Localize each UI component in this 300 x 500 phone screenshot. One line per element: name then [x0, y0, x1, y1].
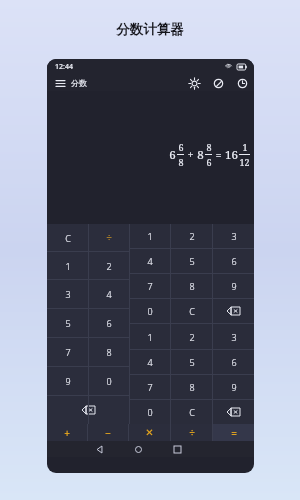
staticText: 8 — [189, 280, 195, 292]
button[interactable]: C — [171, 400, 212, 424]
button[interactable]: 5 — [171, 249, 212, 273]
staticText: ÷ — [189, 426, 195, 440]
button[interactable]: 6 — [88, 309, 129, 337]
button[interactable]: 7 — [47, 338, 88, 366]
staticText: 0 — [147, 305, 153, 317]
button[interactable]: Home — [132, 443, 145, 456]
staticText: 3 — [65, 288, 71, 300]
button[interactable]: 9 — [213, 375, 254, 399]
staticText: C — [189, 305, 195, 317]
staticText: 3 — [231, 230, 237, 242]
button[interactable]: 2 — [88, 252, 129, 279]
button[interactable]: Menu — [53, 76, 67, 90]
staticText: 7 — [147, 280, 153, 292]
staticText: 6 — [178, 141, 184, 153]
button[interactable]: 8 — [88, 338, 129, 366]
button[interactable]: Backspace — [47, 396, 129, 424]
staticText: 8 — [197, 147, 204, 163]
staticText: 分数计算器 — [116, 21, 184, 38]
staticText: 4 — [147, 356, 153, 368]
staticText: 2 — [106, 260, 112, 272]
staticText: + — [187, 147, 194, 162]
staticText: 9 — [231, 381, 237, 393]
button[interactable]: History — [235, 76, 249, 90]
button[interactable]: 1 — [130, 224, 170, 248]
staticText: 6 — [169, 147, 176, 163]
button[interactable]: 0 — [88, 367, 129, 395]
button[interactable]: 5 — [171, 350, 212, 374]
staticText: 6 — [206, 156, 212, 168]
button[interactable]: 4 — [130, 249, 170, 273]
button[interactable]: 3 — [47, 280, 88, 308]
button[interactable]: + — [47, 424, 87, 441]
button[interactable]: 1 — [130, 324, 170, 349]
button[interactable]: = — [213, 424, 254, 441]
staticText: ✕ — [145, 427, 154, 439]
button[interactable]: 4 — [130, 350, 170, 374]
button[interactable]: 7 — [130, 274, 170, 298]
button[interactable]: 8 — [171, 375, 212, 399]
staticText: 0 — [106, 375, 112, 387]
staticText: − — [105, 426, 111, 440]
staticText: 6 — [231, 356, 237, 368]
button[interactable]: − — [88, 424, 128, 441]
button[interactable]: 6 — [213, 350, 254, 374]
button[interactable]: ✕ — [129, 424, 170, 441]
button[interactable]: 4 — [88, 280, 129, 308]
staticText: 1 — [147, 230, 153, 242]
button[interactable]: Back — [93, 443, 106, 456]
button[interactable]: 1 — [47, 252, 88, 279]
button[interactable]: Recents — [171, 443, 184, 456]
button[interactable]: C — [171, 299, 212, 323]
staticText: 16 — [225, 147, 238, 163]
staticText: 4 — [147, 255, 153, 267]
button[interactable]: 2 — [171, 224, 212, 248]
staticText: 1 — [147, 331, 153, 343]
button[interactable]: ÷ — [171, 424, 212, 441]
staticText: ÷ — [106, 231, 112, 245]
staticText: 8 — [189, 381, 195, 393]
button[interactable]: 3 — [213, 324, 254, 349]
button[interactable]: 8 — [171, 274, 212, 298]
staticText: 1 — [65, 260, 71, 272]
button[interactable]: 2 — [171, 324, 212, 349]
button[interactable]: 3 — [213, 224, 254, 248]
button[interactable]: ÷ — [88, 224, 129, 251]
staticText: 1 — [242, 141, 248, 153]
staticText: 5 — [189, 255, 195, 267]
button[interactable]: 9 — [47, 367, 88, 395]
staticText: = — [231, 426, 237, 440]
button[interactable]: Backspace — [213, 400, 254, 424]
staticText: 9 — [231, 280, 237, 292]
staticText: 8 — [178, 156, 184, 168]
staticText: 7 — [65, 346, 71, 358]
staticText: 9 — [65, 375, 71, 387]
button[interactable]: Brightness — [187, 76, 201, 90]
button[interactable]: 7 — [130, 375, 170, 399]
button[interactable]: C — [47, 224, 88, 251]
button[interactable]: 6 — [213, 249, 254, 273]
staticText: 分数 — [71, 78, 87, 88]
staticText: 8 — [206, 141, 212, 153]
staticText: 8 — [106, 346, 112, 358]
staticText: 5 — [65, 317, 71, 329]
staticText: 0 — [147, 406, 153, 418]
staticText: C — [65, 232, 71, 244]
staticText: 4 — [106, 288, 112, 300]
button[interactable]: 0 — [130, 400, 170, 424]
button[interactable]: Theme — [211, 76, 225, 90]
staticText: 2 — [189, 331, 195, 343]
button[interactable]: 9 — [213, 274, 254, 298]
staticText: = — [215, 147, 222, 162]
staticText: C — [189, 406, 195, 418]
button[interactable]: Backspace — [213, 299, 254, 323]
staticText: 6 — [231, 255, 237, 267]
staticText: + — [64, 426, 70, 440]
staticText: 12:44 — [55, 62, 73, 72]
button[interactable]: 0 — [130, 299, 170, 323]
button[interactable]: 5 — [47, 309, 88, 337]
staticText: 3 — [231, 331, 237, 343]
staticText: 12 — [239, 156, 250, 168]
staticText: 6 — [106, 317, 112, 329]
staticText: 2 — [189, 230, 195, 242]
